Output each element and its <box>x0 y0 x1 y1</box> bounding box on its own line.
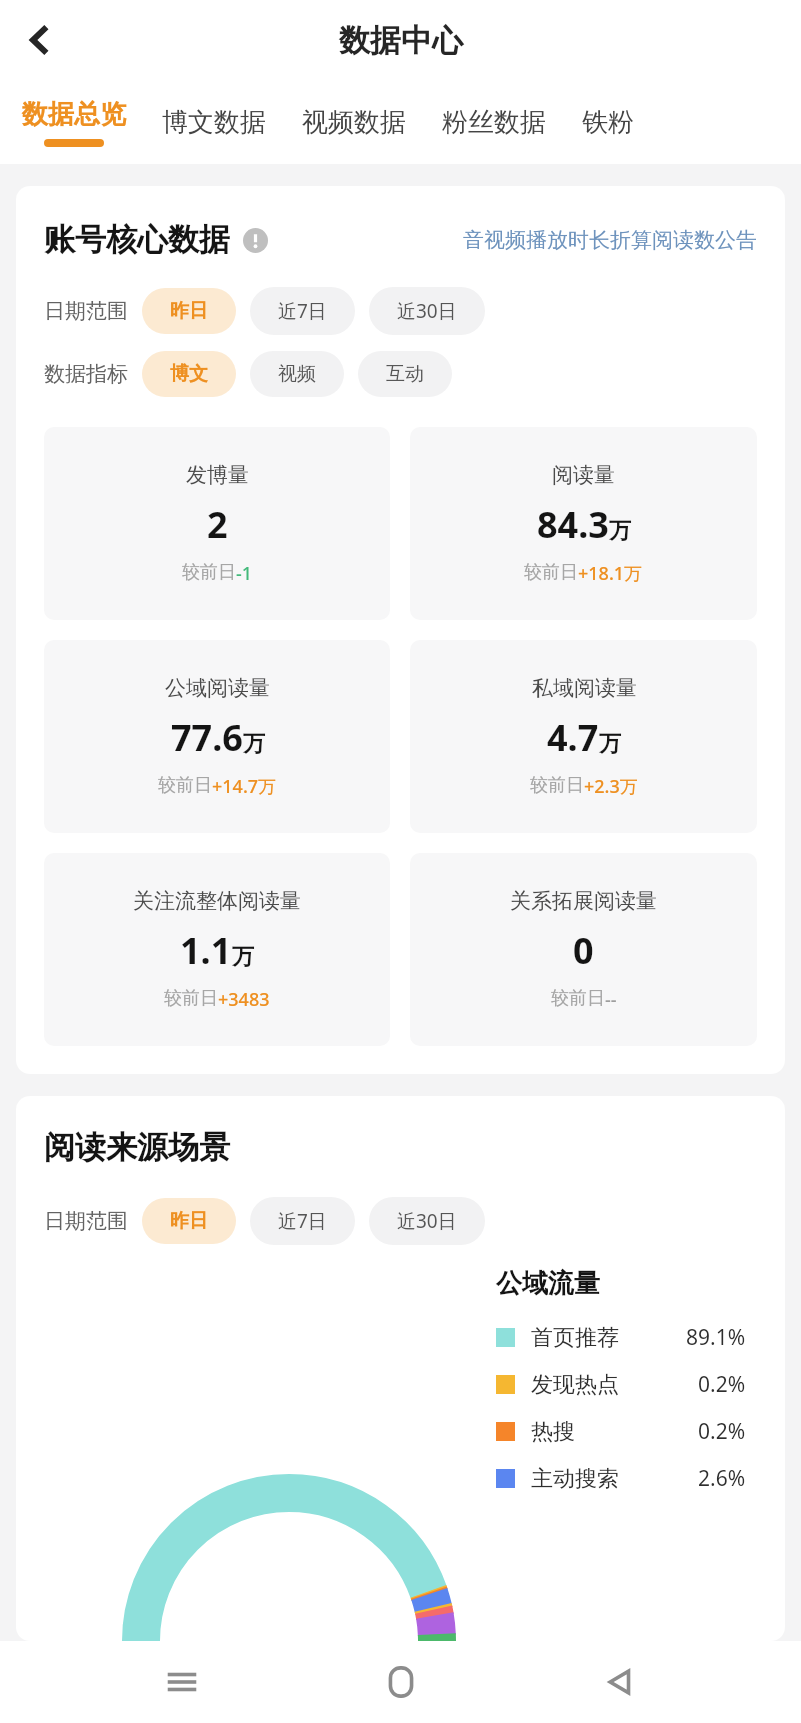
button[interactable]: 昨日 <box>142 288 236 334</box>
staticText: 互动 <box>386 362 424 386</box>
staticText: 较前日 <box>551 987 605 1010</box>
staticText: -1 <box>236 561 253 586</box>
staticText: 84.3 <box>537 500 609 549</box>
staticText: 音视频播放时长折算阅读数公告 <box>463 227 757 253</box>
staticText: +14.7万 <box>212 774 277 799</box>
button[interactable]: 音视频播放时长折算阅读数公告 <box>463 227 757 253</box>
staticText: 万 <box>232 943 254 971</box>
staticText: 账号核心数据 <box>44 220 230 259</box>
button[interactable]: 关系拓展阅读量 <box>410 853 757 1046</box>
staticText: 博文数据 <box>162 106 266 139</box>
staticText: 较前日 <box>158 774 212 797</box>
staticText: 万 <box>599 730 621 758</box>
button[interactable]: 博文 <box>142 351 236 397</box>
button[interactable]: 发博量 <box>44 427 390 620</box>
staticText: 万 <box>243 730 265 758</box>
button[interactable]: 近30日 <box>369 287 485 335</box>
staticText: 4.7 <box>547 713 599 762</box>
staticText: +2.3万 <box>584 774 638 799</box>
staticText: 关系拓展阅读量 <box>510 888 657 914</box>
staticText: 主动搜索 <box>531 1465 619 1493</box>
staticText: +3483 <box>218 987 270 1012</box>
staticText: 热搜 <box>531 1418 575 1446</box>
staticText: 近30日 <box>397 298 457 324</box>
staticText: 数据总览 <box>22 98 126 131</box>
button[interactable]: Recents <box>146 1646 218 1718</box>
staticText: 日期范围 <box>44 1208 128 1234</box>
button[interactable]: 关注流整体阅读量 <box>44 853 390 1046</box>
button[interactable]: 视频 <box>250 351 344 397</box>
staticText: 较前日 <box>530 774 584 797</box>
button[interactable]: 铁粉 <box>582 106 634 139</box>
button[interactable]: 热搜 <box>496 1408 766 1455</box>
button[interactable]: 私域阅读量 <box>410 640 757 833</box>
staticText: 公域流量 <box>496 1267 600 1300</box>
staticText: 近7日 <box>278 1208 327 1234</box>
staticText: 较前日 <box>164 987 218 1010</box>
staticText: 较前日 <box>182 561 236 584</box>
staticText: 1.1 <box>180 926 232 975</box>
button[interactable]: 公域阅读量 <box>44 640 390 833</box>
button[interactable]: 阅读量 <box>410 427 757 620</box>
button[interactable]: 互动 <box>358 351 452 397</box>
staticText: 粉丝数据 <box>442 106 546 139</box>
staticText: 视频数据 <box>302 106 406 139</box>
button[interactable]: 数据总览 <box>22 98 126 147</box>
staticText: 首页推荐 <box>531 1324 619 1352</box>
staticText: 近7日 <box>278 298 327 324</box>
staticText: 数据指标 <box>44 361 128 387</box>
button[interactable]: Back <box>10 10 70 70</box>
button[interactable]: 主动搜索 <box>496 1455 766 1502</box>
button[interactable]: Info <box>241 226 269 254</box>
button[interactable]: Back <box>583 1646 655 1718</box>
staticText: 发博量 <box>186 462 249 488</box>
button[interactable]: Home <box>365 1646 437 1718</box>
staticText: 阅读量 <box>552 462 615 488</box>
staticText: 发现热点 <box>531 1371 619 1399</box>
staticText: 0 <box>573 926 594 975</box>
staticText: -- <box>605 987 617 1012</box>
button[interactable]: 视频数据 <box>302 106 406 139</box>
staticText: 89.1% <box>686 1323 746 1352</box>
staticText: 较前日 <box>524 561 578 584</box>
staticText: 公域阅读量 <box>165 675 270 701</box>
staticText: +18.1万 <box>578 561 643 586</box>
staticText: 万 <box>609 517 631 545</box>
staticText: 博文 <box>170 362 208 386</box>
staticText: 77.6 <box>171 713 243 762</box>
staticText: 2 <box>207 500 228 549</box>
staticText: 0.2% <box>698 1417 746 1446</box>
staticText: 昨日 <box>170 1209 208 1233</box>
staticText: 铁粉 <box>582 106 634 139</box>
staticText: 阅读来源场景 <box>44 1128 230 1167</box>
staticText: 数据中心 <box>339 21 463 60</box>
staticText: 私域阅读量 <box>532 675 637 701</box>
staticText: 关注流整体阅读量 <box>133 888 301 914</box>
button[interactable]: 近7日 <box>250 287 355 335</box>
button[interactable]: 近7日 <box>250 1197 355 1245</box>
staticText: 2.6% <box>698 1464 746 1493</box>
staticText: 近30日 <box>397 1208 457 1234</box>
staticText: 昨日 <box>170 299 208 323</box>
button[interactable]: 首页推荐 <box>496 1314 766 1361</box>
staticText: 视频 <box>278 362 316 386</box>
staticText: 日期范围 <box>44 298 128 324</box>
button[interactable]: 粉丝数据 <box>442 106 546 139</box>
button[interactable]: 发现热点 <box>496 1361 766 1408</box>
button[interactable]: 昨日 <box>142 1198 236 1244</box>
button[interactable]: 近30日 <box>369 1197 485 1245</box>
staticText: 0.2% <box>698 1370 746 1399</box>
button[interactable]: 博文数据 <box>162 106 266 139</box>
